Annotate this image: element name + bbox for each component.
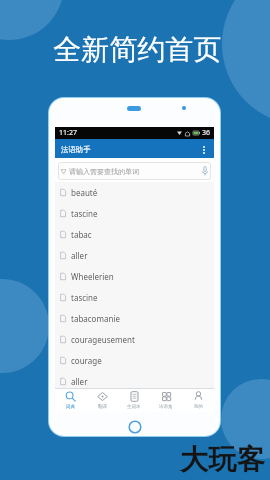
button[interactable]: aller: [55, 371, 214, 392]
button[interactable]: 词典: [55, 389, 86, 412]
button[interactable]: 法语角: [150, 389, 182, 412]
staticText: 我的: [194, 404, 203, 410]
button[interactable]: tascine: [55, 203, 214, 224]
button[interactable]: beauté: [55, 182, 214, 203]
staticText: Wheelerien: [71, 271, 114, 282]
button[interactable]: 翻译: [86, 389, 118, 412]
button[interactable]: courageusement: [55, 329, 214, 350]
button[interactable]: More options: [198, 141, 209, 158]
button[interactable]: tabacomanie: [55, 308, 214, 329]
staticText: tascine: [71, 208, 98, 219]
button[interactable]: 我的: [182, 389, 214, 412]
staticText: 词典: [66, 404, 75, 410]
staticText: 大玩客: [180, 442, 266, 477]
staticText: 法语助手: [61, 145, 91, 154]
staticText: aller: [71, 250, 88, 261]
staticText: 请输入需要查找的单词: [69, 167, 139, 176]
staticText: 11:27: [59, 128, 77, 138]
staticText: 生词本: [127, 404, 141, 410]
staticText: 法语角: [159, 404, 173, 410]
button[interactable]: aller: [55, 245, 214, 266]
staticText: tascine: [71, 292, 98, 303]
button[interactable]: Wheelerien: [55, 266, 214, 287]
staticText: 翻译: [98, 404, 107, 410]
button[interactable]: tascine: [55, 287, 214, 308]
staticText: beauté: [71, 187, 98, 198]
staticText: tabac: [71, 229, 92, 240]
button[interactable]: tabac: [55, 224, 214, 245]
staticText: tabacomanie: [71, 313, 120, 324]
staticText: 36: [202, 128, 211, 138]
staticText: courage: [71, 355, 102, 366]
button[interactable]: 请输入需要查找的单词: [58, 162, 211, 180]
staticText: aller: [71, 376, 88, 387]
staticText: 全新简约首页: [53, 32, 222, 67]
staticText: courageusement: [71, 334, 135, 345]
button[interactable]: courage: [55, 350, 214, 371]
button[interactable]: 生词本: [118, 389, 150, 412]
